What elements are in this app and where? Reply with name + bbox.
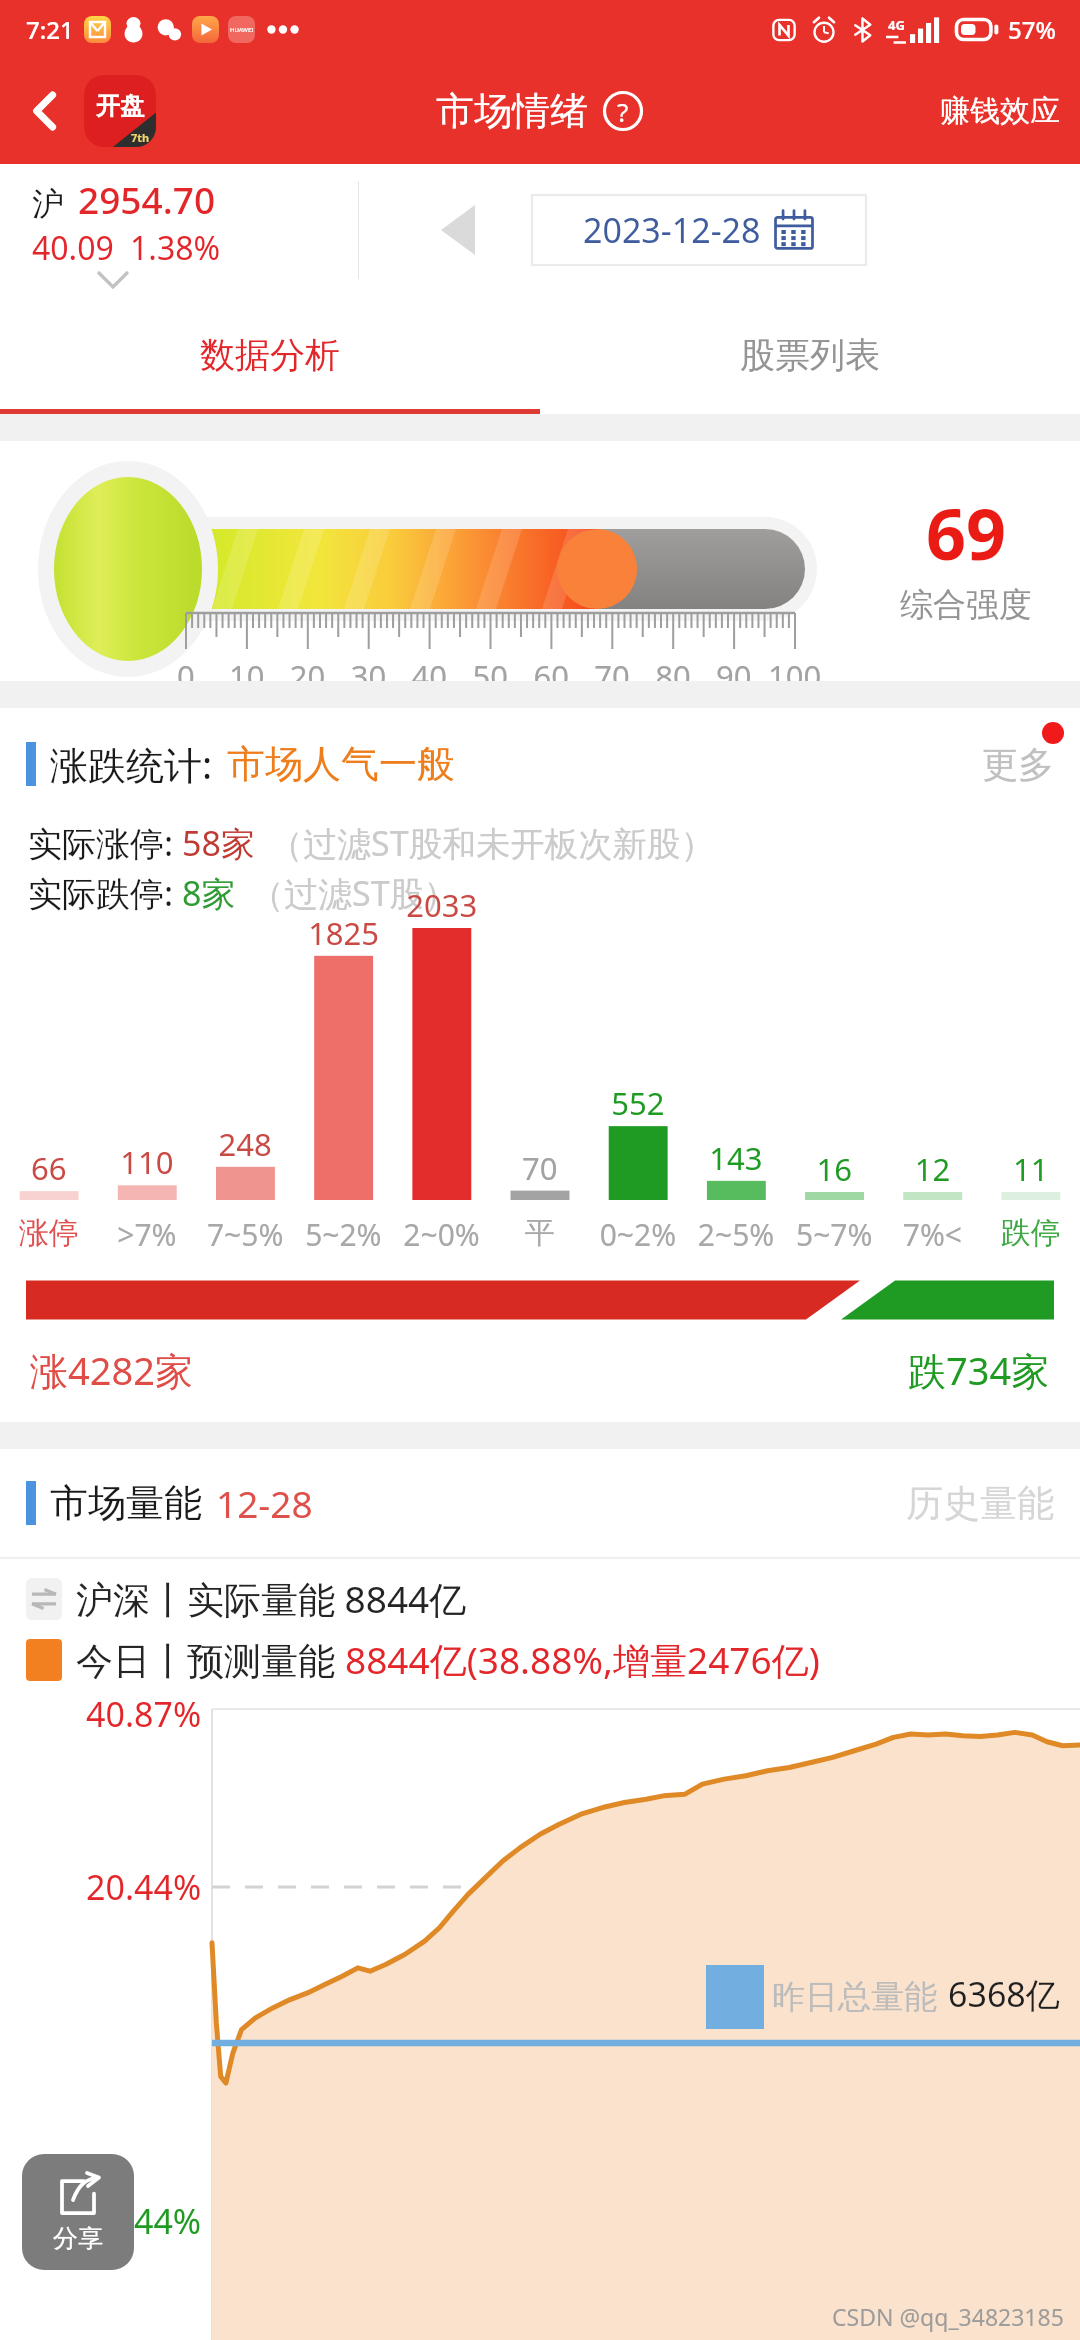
staticText: 实际跌停: [28, 870, 182, 916]
staticText: 7th [131, 130, 150, 145]
staticText: 涨4282家 [30, 1344, 193, 1396]
staticText: 历史量能 [906, 1480, 1054, 1527]
staticText: （过滤ST股和未开板次新股） [269, 820, 715, 866]
staticText: 涨跌统计: [50, 738, 213, 790]
button[interactable]: Back [10, 76, 80, 146]
button[interactable]: 涨跌统计: [0, 708, 1080, 820]
staticText: 市场量能 [50, 1479, 202, 1527]
staticText: 赚钱效应 [940, 92, 1060, 130]
button[interactable]: 历史量能 [906, 1480, 1054, 1527]
staticText: 40.09 [32, 226, 114, 270]
staticText: 8家 [182, 870, 236, 916]
staticText: 2954.70 [78, 174, 216, 224]
staticText: HUAWEI [230, 26, 254, 34]
staticText: 综合强度 [900, 584, 1032, 626]
staticText: 跌734家 [908, 1344, 1050, 1396]
staticText: 今日丨预测量能 [76, 1634, 345, 1685]
staticText: 58家 [182, 820, 255, 866]
staticText: 数据分析 [200, 333, 340, 377]
staticText: 市场情绪 [436, 87, 588, 135]
staticText: 12-28 [216, 1478, 313, 1528]
button[interactable]: Previous day [418, 190, 498, 270]
staticText: 沪 [32, 184, 64, 224]
staticText: 1.38% [130, 226, 221, 270]
staticText: 股票列表 [740, 333, 880, 377]
staticText: 更多 [982, 742, 1054, 787]
button[interactable]: 赚钱效应 [940, 92, 1060, 130]
staticText: （过滤ST股） [250, 870, 458, 916]
staticText: 4G [888, 16, 905, 34]
staticText: 7:21 [26, 13, 74, 46]
staticText: ? [617, 94, 629, 129]
button[interactable]: Share [22, 2154, 134, 2270]
button[interactable]: 数据分析 [0, 296, 540, 414]
button[interactable]: 市场情绪 [436, 87, 644, 135]
button[interactable]: 2023-12-28 [532, 195, 866, 265]
staticText: 市场人气一般 [227, 740, 455, 788]
button[interactable]: 股票列表 [540, 296, 1080, 414]
staticText: 8844亿(38.88%,增量2476亿) [345, 1634, 820, 1685]
staticText: 69 [926, 485, 1007, 580]
staticText: 沪深丨实际量能 8844亿 [76, 1573, 467, 1624]
staticText: 分享 [53, 2223, 103, 2254]
button[interactable]: 沪 [32, 174, 332, 287]
staticText: 57% [1008, 13, 1056, 46]
staticText: 2023-12-28 [583, 207, 761, 253]
staticText: 实际涨停: [28, 820, 182, 866]
staticText: 开盘 [96, 91, 144, 121]
button[interactable]: App home [84, 75, 156, 147]
